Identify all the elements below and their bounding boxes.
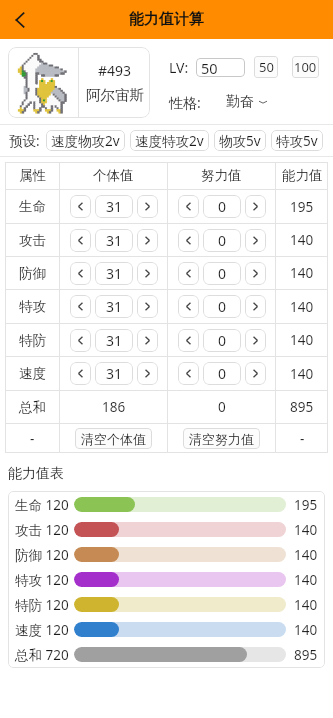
button[interactable]: Decrease: [70, 362, 91, 385]
staticText: 特攻: [19, 298, 46, 315]
button[interactable]: 31: [95, 229, 133, 252]
staticText: 0: [218, 297, 227, 316]
button[interactable]: 速度物攻2v: [46, 130, 125, 151]
staticText: 100: [294, 58, 317, 76]
button[interactable]: Increase: [245, 295, 266, 318]
button[interactable]: Decrease: [70, 229, 91, 252]
button[interactable]: Decrease: [70, 295, 91, 318]
button[interactable]: 勤奋: [226, 93, 267, 111]
button[interactable]: Decrease: [178, 262, 199, 285]
button[interactable]: 31: [95, 362, 133, 385]
button[interactable]: Increase: [137, 195, 158, 218]
staticText: 生命: [19, 198, 46, 215]
button[interactable]: 31: [95, 295, 133, 318]
staticText: 0: [218, 264, 227, 283]
button[interactable]: Increase: [245, 329, 266, 352]
staticText: 140: [294, 621, 318, 639]
staticText: 个体值: [93, 167, 134, 184]
staticText: 31: [106, 231, 123, 250]
staticText: -: [30, 430, 35, 448]
button[interactable]: 31: [95, 262, 133, 285]
staticText: 31: [106, 364, 123, 383]
button[interactable]: 特攻5v: [271, 130, 323, 151]
staticText: 总和 720: [15, 646, 69, 664]
staticText: 140: [290, 231, 314, 249]
staticText: 物攻5v: [219, 132, 261, 150]
staticText: 阿尔宙斯: [86, 86, 144, 104]
button[interactable]: Increase: [245, 362, 266, 385]
button[interactable]: Decrease: [178, 295, 199, 318]
staticText: 能力值: [282, 167, 323, 184]
staticText: 140: [290, 365, 314, 383]
button[interactable]: Decrease: [178, 362, 199, 385]
staticText: 140: [294, 521, 318, 539]
staticText: 攻击: [19, 232, 46, 249]
button[interactable]: Increase: [137, 329, 158, 352]
staticText: 0: [218, 231, 227, 250]
staticText: 140: [290, 298, 314, 316]
staticText: 攻击 120: [15, 521, 69, 539]
button[interactable]: #493: [8, 47, 150, 118]
button[interactable]: 31: [95, 329, 133, 352]
staticText: 特防 120: [15, 596, 69, 614]
button[interactable]: Increase: [137, 262, 158, 285]
staticText: 0: [218, 364, 227, 383]
button[interactable]: Decrease: [70, 262, 91, 285]
staticText: 140: [294, 546, 318, 564]
button[interactable]: 50: [196, 58, 245, 77]
staticText: 186: [102, 398, 126, 416]
staticText: LV:: [169, 58, 189, 77]
button[interactable]: Increase: [137, 362, 158, 385]
staticText: 速度物攻2v: [51, 132, 120, 150]
staticText: 特防: [19, 332, 46, 349]
staticText: 速度: [19, 365, 46, 382]
staticText: 能力值计算: [129, 10, 204, 29]
button[interactable]: 速度特攻2v: [130, 130, 209, 151]
button[interactable]: Increase: [245, 262, 266, 285]
staticText: 140: [290, 331, 314, 349]
button[interactable]: Increase: [245, 229, 266, 252]
staticText: 195: [290, 198, 314, 216]
button[interactable]: 50: [254, 56, 278, 78]
button[interactable]: 0: [203, 195, 241, 218]
staticText: 特攻5v: [276, 132, 318, 150]
button[interactable]: Decrease: [178, 195, 199, 218]
staticText: 31: [106, 297, 123, 316]
button[interactable]: 31: [95, 195, 133, 218]
button[interactable]: Increase: [137, 229, 158, 252]
button[interactable]: 0: [203, 329, 241, 352]
staticText: 特攻 120: [15, 571, 69, 589]
staticText: 31: [106, 264, 123, 283]
staticText: 895: [290, 398, 314, 416]
staticText: 性格:: [169, 93, 201, 112]
button[interactable]: 100: [292, 56, 319, 78]
staticText: 195: [294, 496, 318, 514]
staticText: 0: [218, 331, 227, 350]
button[interactable]: 0: [203, 362, 241, 385]
button[interactable]: Decrease: [70, 329, 91, 352]
button[interactable]: Increase: [137, 295, 158, 318]
staticText: 140: [290, 264, 314, 282]
button[interactable]: 物攻5v: [214, 130, 266, 151]
button[interactable]: Decrease: [178, 229, 199, 252]
button[interactable]: 清空个体值: [75, 428, 152, 449]
staticText: 50: [201, 58, 218, 77]
staticText: 31: [106, 331, 123, 350]
staticText: #493: [98, 61, 132, 80]
staticText: 总和: [19, 399, 46, 416]
button[interactable]: Decrease: [70, 195, 91, 218]
staticText: 防御 120: [15, 546, 69, 564]
button[interactable]: 0: [203, 229, 241, 252]
staticText: 属性: [19, 167, 46, 184]
button[interactable]: 0: [203, 295, 241, 318]
button[interactable]: 0: [203, 262, 241, 285]
button[interactable]: Decrease: [178, 329, 199, 352]
button[interactable]: Increase: [245, 195, 266, 218]
staticText: 0: [218, 197, 227, 216]
button[interactable]: 清空努力值: [183, 428, 260, 449]
button[interactable]: Back: [0, 0, 39, 39]
staticText: 防御: [19, 265, 46, 282]
staticText: 能力值表: [8, 465, 64, 483]
staticText: -: [300, 430, 305, 448]
staticText: 努力值: [201, 167, 242, 184]
